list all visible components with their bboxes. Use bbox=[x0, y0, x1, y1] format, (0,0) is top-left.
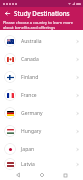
button[interactable]: Latvia bbox=[0, 158, 83, 170]
staticText: Please choose a country to learn more ab… bbox=[3, 20, 80, 30]
staticText: Latvia bbox=[21, 161, 35, 168]
button[interactable]: Home bbox=[37, 170, 47, 180]
button[interactable]: France bbox=[0, 86, 83, 104]
button[interactable]: Hungary bbox=[0, 122, 83, 140]
staticText: France bbox=[21, 92, 37, 99]
button[interactable]: Back bbox=[3, 9, 12, 18]
staticText: Australia bbox=[21, 38, 42, 45]
button[interactable]: Back bbox=[13, 170, 23, 180]
button[interactable]: Finland bbox=[0, 68, 83, 86]
staticText: Finland bbox=[21, 74, 39, 81]
staticText: Germany bbox=[21, 110, 43, 117]
staticText: Japan bbox=[21, 146, 35, 153]
button[interactable]: Australia bbox=[0, 32, 83, 50]
button[interactable]: Japan bbox=[0, 140, 83, 158]
button[interactable]: Canada bbox=[0, 50, 83, 68]
button[interactable]: Germany bbox=[0, 104, 83, 122]
staticText: Study Destinations bbox=[14, 9, 70, 17]
button[interactable]: Recent apps bbox=[60, 170, 70, 180]
staticText: Canada bbox=[21, 56, 39, 63]
staticText: Hungary bbox=[21, 128, 42, 135]
